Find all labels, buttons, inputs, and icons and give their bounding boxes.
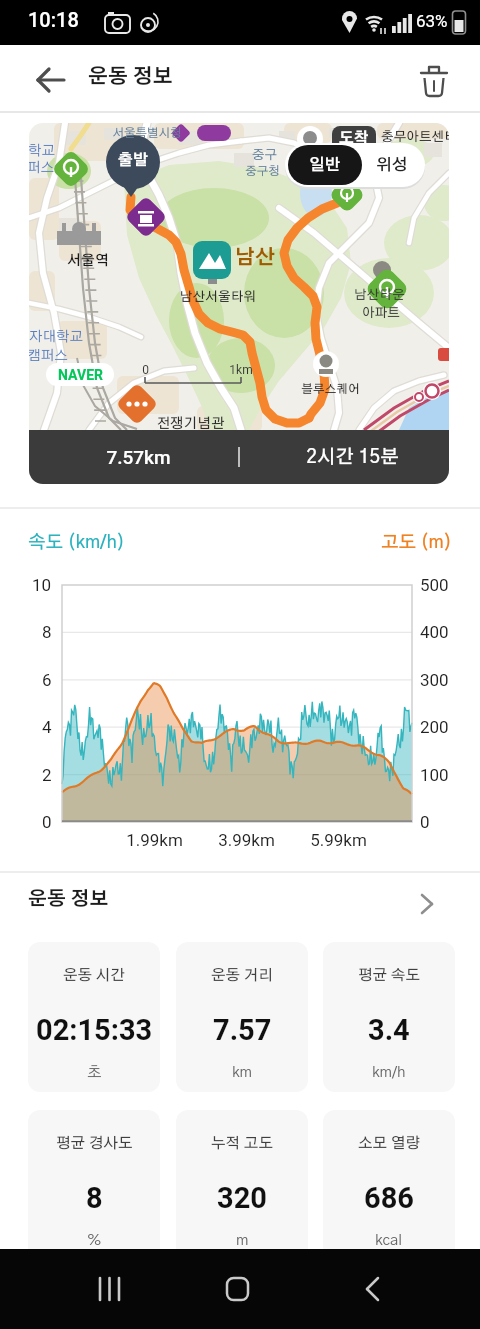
staticText: 위성 [376, 157, 408, 173]
staticText: 2시간 15분 [306, 448, 399, 467]
staticText: 1km [229, 363, 253, 377]
button[interactable]: 서울특별시청 [29, 123, 449, 484]
button[interactable] [408, 55, 460, 105]
button[interactable] [343, 1269, 403, 1309]
staticText: 10:18 [28, 8, 79, 31]
staticText: 중구청 [245, 165, 280, 177]
staticText: 5.99km [310, 830, 367, 850]
staticText: 소모 열량 [358, 1136, 421, 1151]
staticText: 남산 [235, 248, 275, 268]
staticText: 6 [42, 670, 52, 690]
button[interactable]: 위성 [359, 145, 424, 185]
staticText: 4 [42, 717, 52, 737]
staticText: 300 [420, 670, 449, 690]
staticText: 운동 정보 [28, 890, 109, 909]
staticText: 7.57 [213, 1013, 272, 1047]
staticText: 남산서울타워 [180, 291, 256, 304]
staticText: 63% [416, 11, 448, 31]
staticText: 0 [42, 812, 52, 832]
button[interactable] [80, 1269, 140, 1309]
button[interactable]: 운동 정보 [0, 884, 480, 928]
staticText: 8 [42, 622, 52, 642]
staticText: 평균 속도 [358, 968, 421, 983]
staticText: 출발 [118, 153, 148, 168]
staticText: 1.99km [126, 830, 183, 850]
staticText: 속도 (km/h) [28, 534, 125, 552]
staticText: 운동 시간 [63, 968, 126, 983]
staticText: 3.4 [368, 1013, 410, 1047]
staticText: % [87, 1233, 102, 1248]
staticText: 02:15:33 [36, 1013, 153, 1047]
staticText: 서울특별시청 [112, 127, 182, 139]
staticText: 100 [420, 765, 449, 785]
staticText: 캠퍼스 [29, 349, 68, 363]
staticText: 686 [364, 1181, 414, 1215]
button[interactable]: 일반 [288, 145, 362, 185]
staticText: 도착 [339, 131, 369, 146]
staticText: km [232, 1065, 253, 1080]
staticText: 평균 경사도 [56, 1136, 133, 1151]
staticText: 남산타운 [354, 289, 405, 302]
staticText: 누적 고도 [211, 1136, 274, 1151]
staticText: 10 [32, 575, 52, 595]
staticText: 퍼스 [29, 161, 54, 175]
button[interactable]: 평균 속도 [323, 942, 455, 1092]
button[interactable]: 평균 경사도 [28, 1110, 160, 1260]
button[interactable] [26, 55, 76, 105]
staticText: 충무아트센터 [381, 131, 449, 144]
staticText: 400 [420, 622, 449, 642]
staticText: 중구 [252, 149, 277, 162]
staticText: NAVER [58, 367, 103, 383]
staticText: 0 [142, 363, 149, 377]
staticText: 운동 정보 [88, 67, 173, 87]
staticText: 320 [217, 1181, 267, 1215]
staticText: 아파트 [362, 307, 400, 320]
staticText: kcal [375, 1233, 403, 1248]
staticText: 운동 거리 [211, 968, 274, 983]
staticText: 일반 [309, 157, 341, 173]
staticText: 3.99km [218, 830, 275, 850]
staticText: 학교 [29, 144, 55, 158]
staticText: 전쟁기념관 [156, 417, 225, 431]
staticText: 0 [420, 812, 430, 832]
button[interactable] [208, 1269, 268, 1309]
staticText: 초 [87, 1065, 102, 1080]
staticText: 500 [420, 575, 449, 595]
staticText: 서울역 [67, 254, 109, 268]
staticText: 7.57km [106, 446, 171, 468]
staticText: km/h [372, 1065, 406, 1080]
staticText: 200 [420, 717, 449, 737]
staticText: 고도 (m) [381, 534, 452, 552]
button[interactable]: 운동 시간 [28, 942, 160, 1092]
staticText: 8 [86, 1181, 103, 1215]
button[interactable]: 소모 열량 [323, 1110, 455, 1260]
button[interactable]: 누적 고도 [176, 1110, 308, 1260]
staticText: 자대학교 [29, 330, 83, 344]
staticText: 2 [42, 765, 52, 785]
staticText: 블루스퀘어 [301, 383, 360, 395]
staticText: m [236, 1233, 249, 1248]
button[interactable]: 운동 거리 [176, 942, 308, 1092]
